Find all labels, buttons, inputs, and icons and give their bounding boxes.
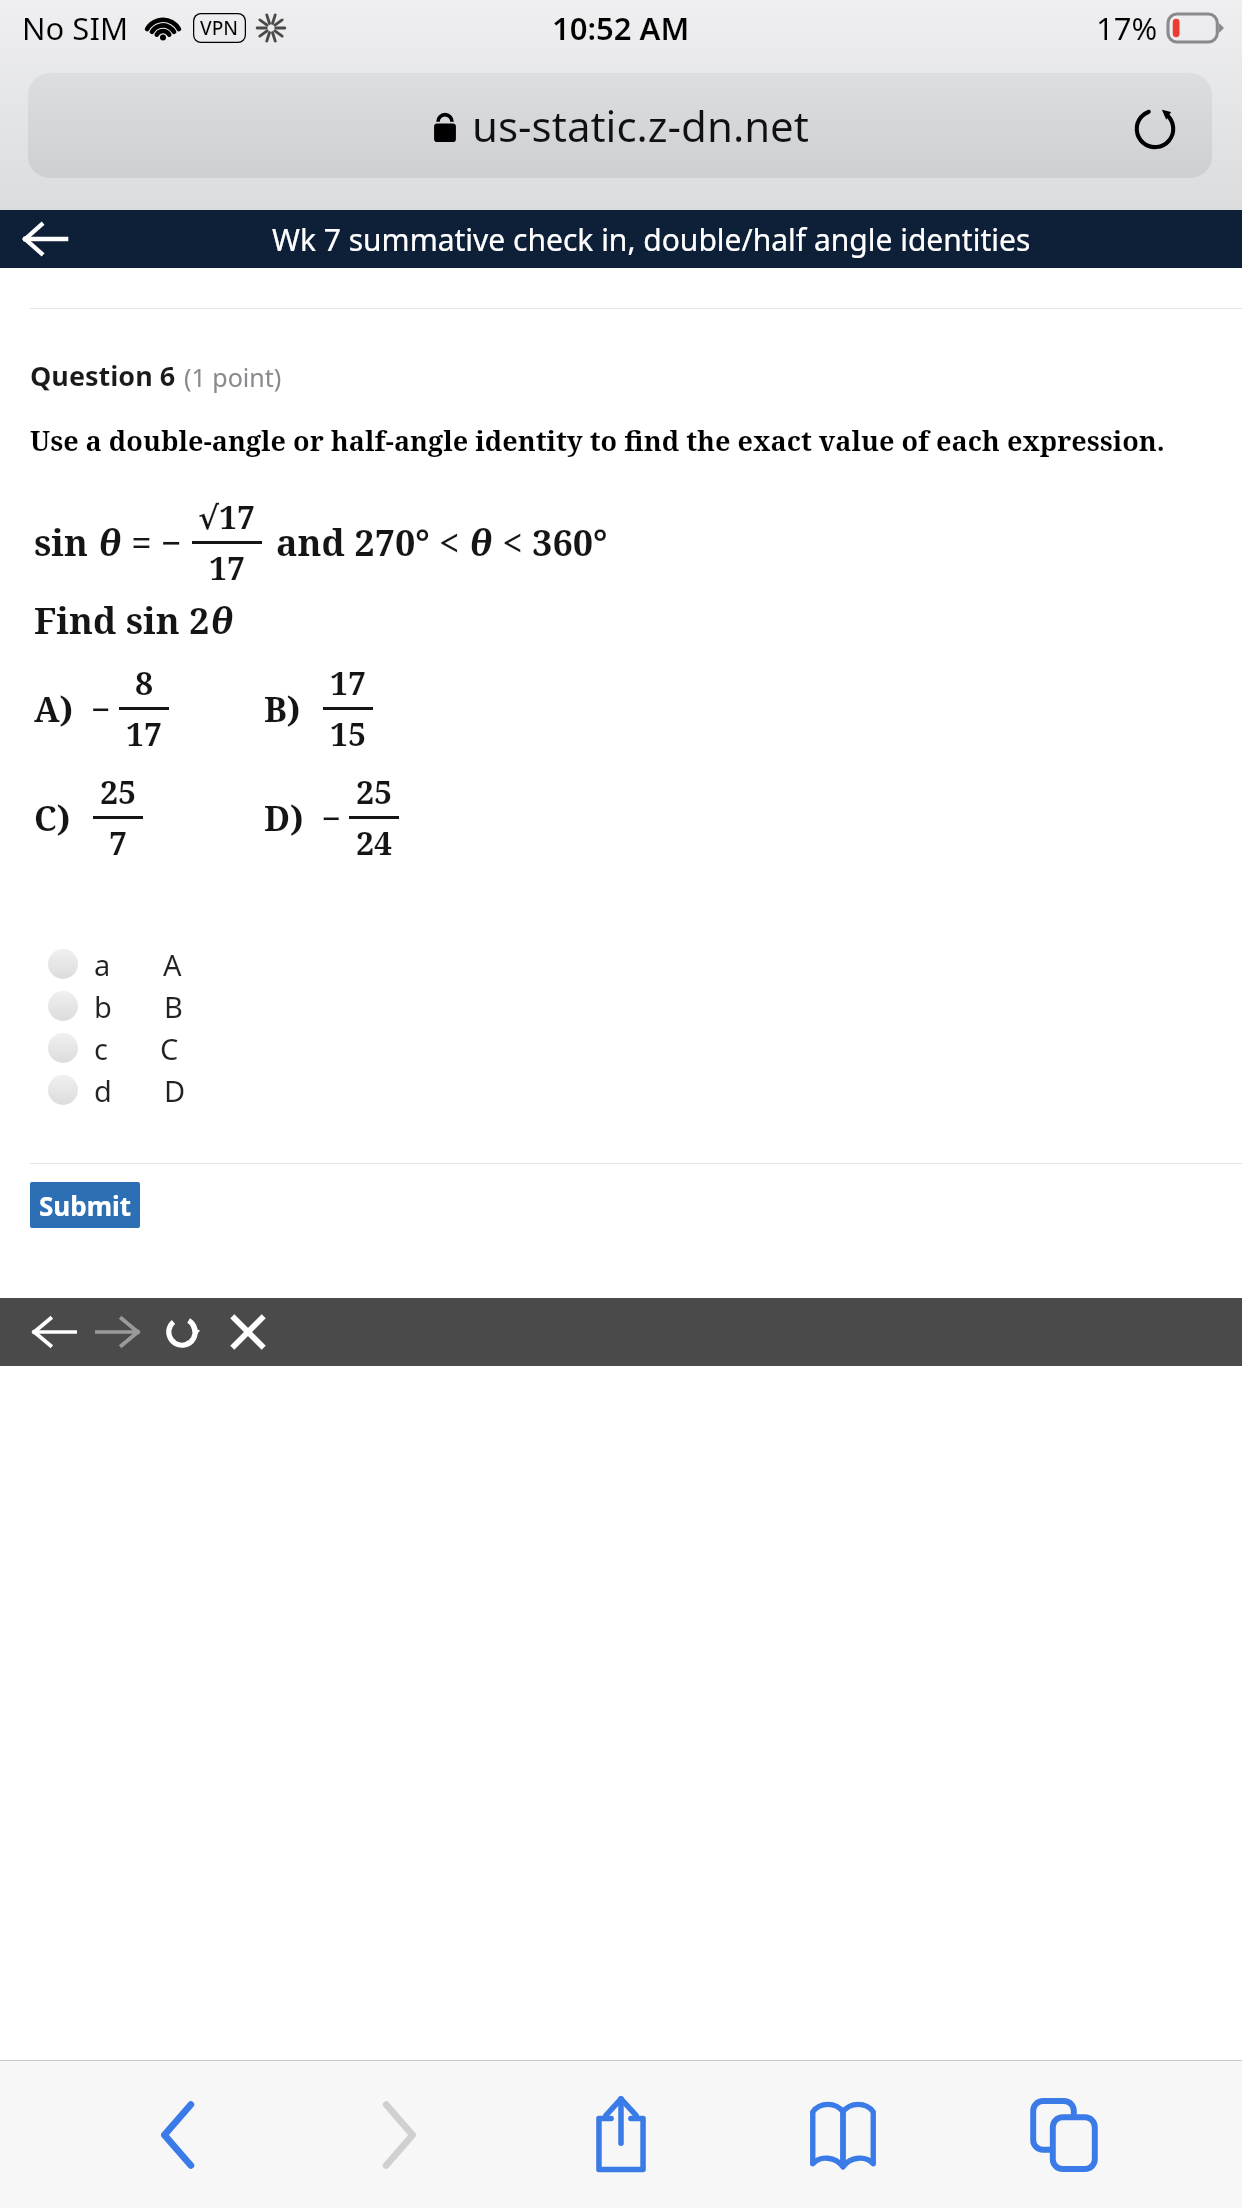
button[interactable]: Forward <box>339 2075 459 2195</box>
button[interactable]: Share <box>561 2075 681 2195</box>
staticText: us-static.z-dn.net <box>472 97 809 154</box>
button[interactable]: Back <box>118 2075 238 2195</box>
staticText: A) − <box>34 686 111 732</box>
staticText: θ <box>210 596 234 645</box>
staticText: VPN <box>200 15 239 41</box>
staticText: 24 <box>356 821 393 865</box>
staticText: Wk 7 summative check in, double/half ang… <box>272 219 1031 260</box>
staticText: B <box>164 987 183 1026</box>
button[interactable]: Reload <box>1118 89 1192 163</box>
staticText: b <box>94 987 112 1026</box>
button[interactable]: Forward <box>88 1298 148 1366</box>
button[interactable]: c <box>48 1027 1242 1069</box>
staticText: θ <box>98 518 122 567</box>
staticText: a <box>94 945 111 984</box>
button[interactable]: Bookmarks <box>783 2075 903 2195</box>
staticText: √17 <box>198 495 256 539</box>
button[interactable]: Submit <box>30 1182 140 1228</box>
staticText: A <box>163 945 182 984</box>
staticText: c <box>94 1029 108 1068</box>
staticText: C <box>160 1029 179 1068</box>
button[interactable]: Refresh <box>152 1298 212 1366</box>
staticText: 25 <box>100 770 137 814</box>
staticText: 17 <box>330 661 367 705</box>
staticText: Submit <box>39 1188 132 1223</box>
staticText: sin <box>34 518 98 567</box>
button[interactable]: Back <box>24 1298 84 1366</box>
staticText: Question 6 <box>30 357 176 394</box>
staticText: < 360° <box>493 518 608 567</box>
staticText: (1 point) <box>184 360 282 394</box>
staticText: 8 <box>135 661 154 705</box>
staticText: 10:52 AM <box>552 7 690 49</box>
button[interactable]: a <box>48 943 1242 985</box>
staticText: 25 <box>356 770 393 814</box>
button[interactable]: Close <box>218 1298 278 1366</box>
staticText: Find sin 2 <box>34 596 210 645</box>
staticText: 17 <box>209 546 246 590</box>
button[interactable]: Back <box>8 210 82 268</box>
staticText: B) <box>264 686 319 732</box>
staticText: C) <box>34 795 89 841</box>
staticText: d <box>94 1071 112 1110</box>
staticText: D <box>164 1071 186 1110</box>
staticText: Use a double-angle or half-angle identit… <box>30 422 1165 459</box>
button[interactable]: us-static.z-dn.net <box>28 73 1212 178</box>
staticText: 15 <box>330 712 367 756</box>
button[interactable]: Tabs <box>1004 2075 1124 2195</box>
staticText: θ <box>469 518 493 567</box>
button[interactable]: d <box>48 1069 1242 1111</box>
staticText: No SIM <box>22 7 129 49</box>
staticText: 17 <box>126 712 163 756</box>
staticText: and 270° < <box>276 518 469 567</box>
staticText: D) − <box>264 795 341 841</box>
staticText: 7 <box>109 821 128 865</box>
staticText: = − <box>122 518 182 567</box>
button[interactable]: b <box>48 985 1242 1027</box>
staticText: 17% <box>1096 7 1158 49</box>
